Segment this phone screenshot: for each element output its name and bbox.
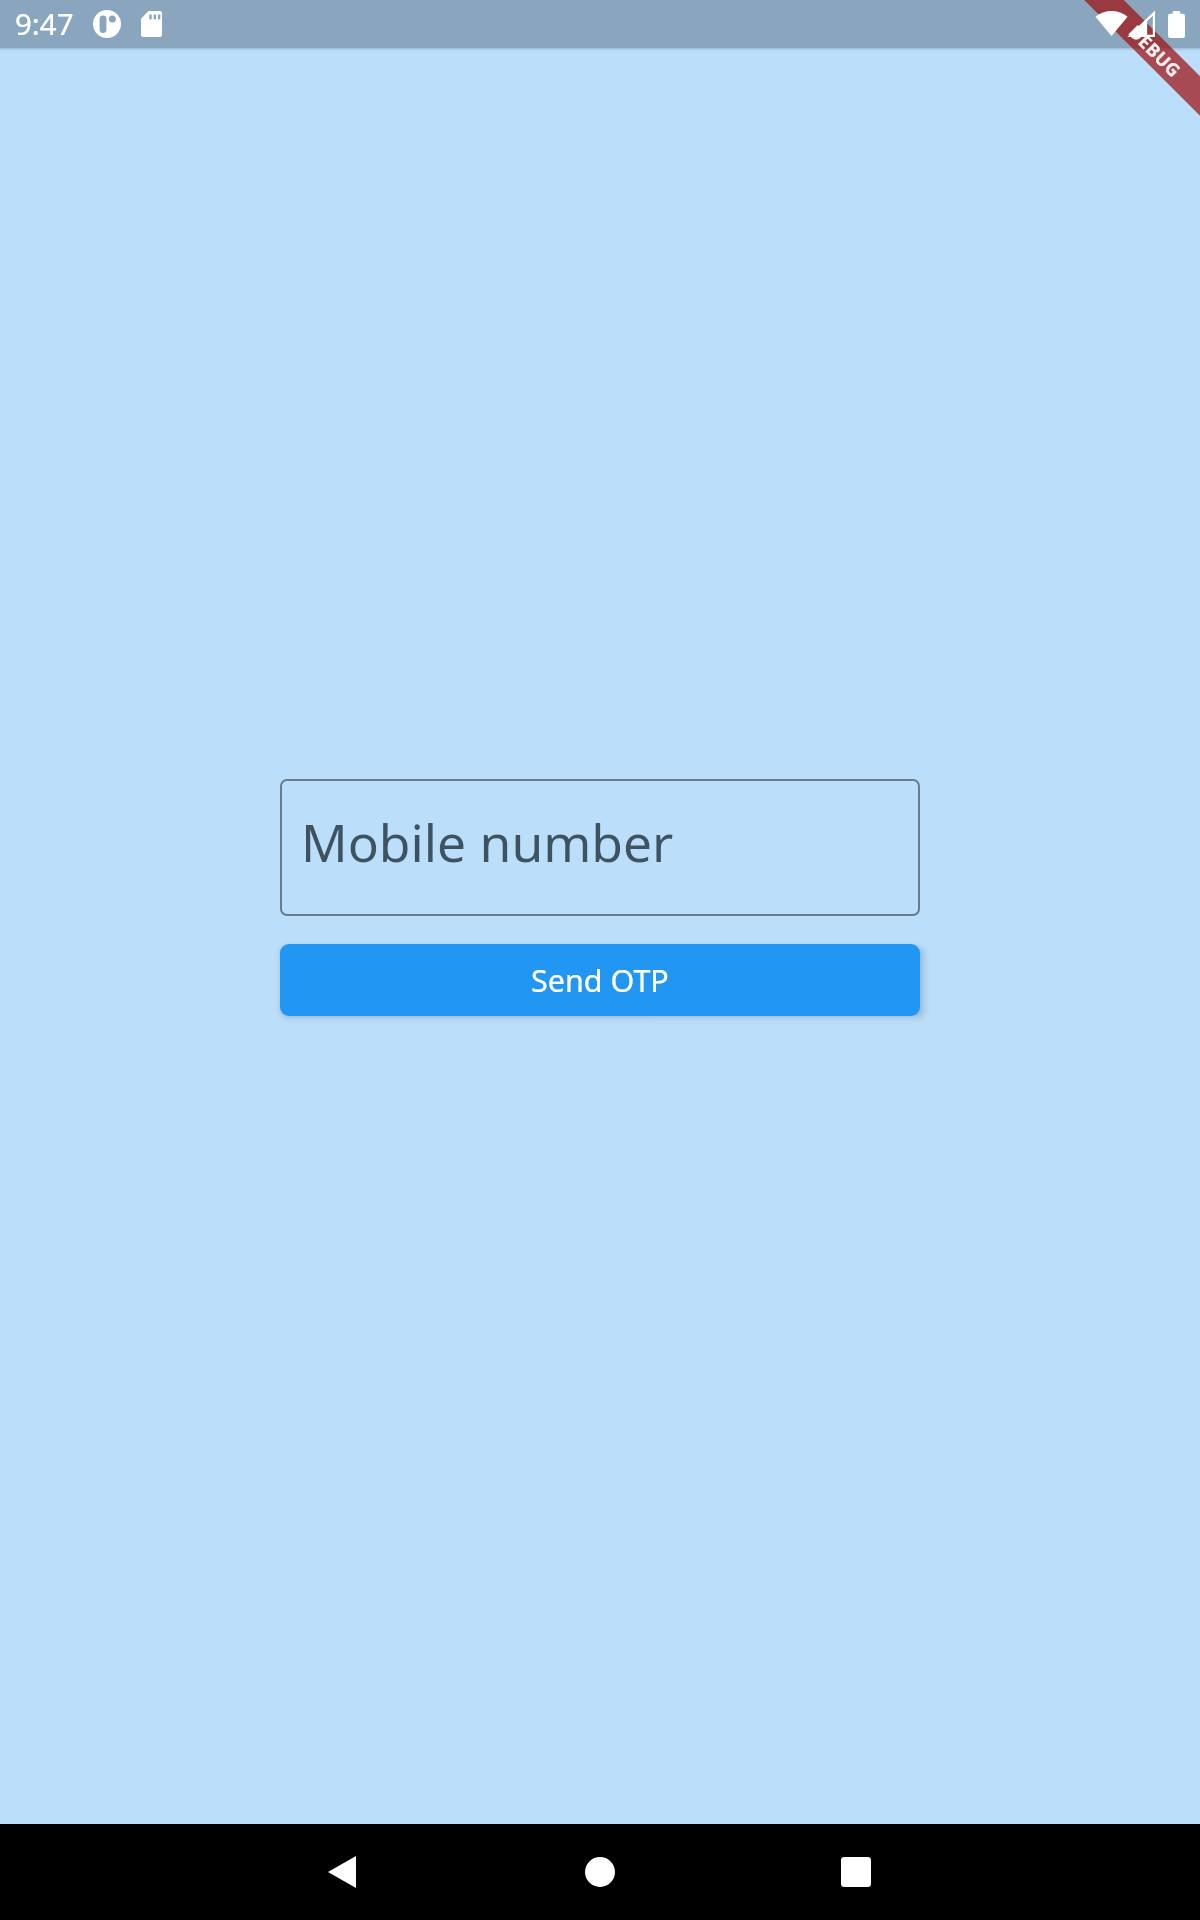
staticText: Send OTP: [531, 959, 669, 1001]
button[interactable]: Back: [294, 1824, 390, 1920]
button[interactable]: Home: [552, 1824, 648, 1920]
staticText: 9:47: [15, 3, 74, 43]
button[interactable]: Mobile number: [280, 779, 920, 916]
button[interactable]: Recent apps: [808, 1824, 904, 1920]
button[interactable]: Send OTP: [280, 944, 920, 1016]
staticText: Mobile number: [301, 807, 674, 877]
staticText: DEBUG: [1123, 20, 1186, 83]
